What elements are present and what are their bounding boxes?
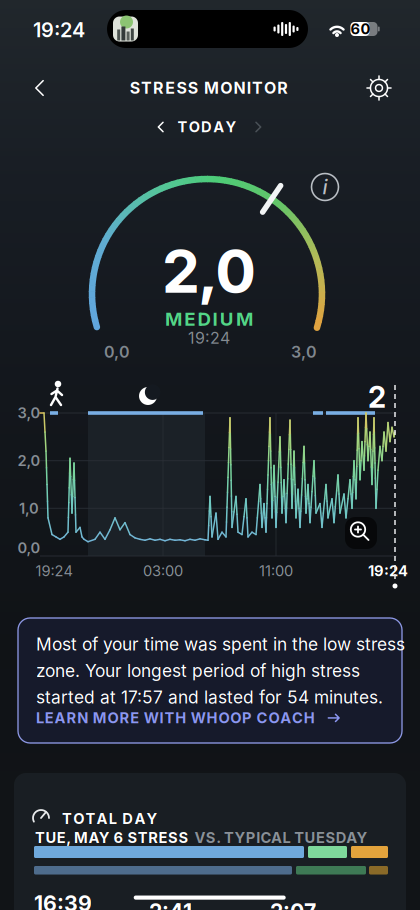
staticText: T bbox=[164, 709, 174, 727]
button[interactable]: L bbox=[36, 709, 343, 727]
staticText: 3,0 bbox=[291, 343, 317, 361]
staticText: O bbox=[220, 79, 232, 97]
staticText: H bbox=[304, 709, 315, 727]
staticText: T bbox=[252, 79, 263, 97]
staticText: 19:24 bbox=[188, 329, 230, 347]
staticText: A bbox=[97, 810, 108, 827]
staticText: E bbox=[130, 709, 139, 727]
staticText: 0,0 bbox=[17, 539, 40, 557]
staticText: 19:24 bbox=[368, 562, 408, 580]
staticText: N bbox=[233, 79, 245, 97]
staticText: 2:07 bbox=[270, 899, 316, 910]
staticText: H bbox=[207, 709, 218, 727]
staticText: M bbox=[236, 308, 253, 330]
staticText: R bbox=[277, 79, 288, 97]
staticText: M bbox=[204, 79, 219, 97]
staticText: H bbox=[175, 709, 186, 727]
staticText: 1,0 bbox=[19, 500, 39, 517]
staticText: i bbox=[322, 175, 327, 199]
staticText: Most of your time was spent in the low s… bbox=[36, 634, 405, 654]
staticText: S bbox=[176, 79, 186, 97]
staticText: T bbox=[85, 810, 95, 827]
staticText: T bbox=[178, 118, 188, 136]
staticText: S bbox=[188, 79, 198, 97]
staticText: C bbox=[257, 709, 268, 727]
staticText: I bbox=[247, 79, 251, 97]
staticText: O bbox=[268, 709, 279, 727]
staticText: U bbox=[220, 308, 234, 330]
staticText: I bbox=[213, 308, 218, 330]
staticText: E bbox=[165, 79, 175, 97]
staticText: O bbox=[230, 709, 241, 727]
button[interactable]: Next day bbox=[245, 114, 271, 140]
staticText: TUE, MAY 6 STRESS bbox=[35, 829, 188, 846]
staticText: N bbox=[77, 709, 88, 727]
button[interactable]: Back bbox=[20, 68, 60, 108]
staticText: 03:00 bbox=[143, 562, 183, 580]
button[interactable]: Zoom chart bbox=[345, 517, 377, 549]
staticText: O bbox=[189, 118, 200, 136]
staticText: Y bbox=[147, 810, 158, 827]
staticText: O bbox=[108, 709, 119, 727]
staticText: R bbox=[119, 709, 129, 727]
staticText: R bbox=[153, 79, 164, 97]
staticText: 60 bbox=[350, 20, 370, 38]
button[interactable]: Previous day bbox=[148, 114, 174, 140]
staticText: P bbox=[242, 709, 252, 727]
staticText: O bbox=[218, 709, 229, 727]
staticText: O bbox=[264, 79, 276, 97]
staticText: VS. TYPICAL TUESDAY bbox=[194, 829, 368, 846]
staticText: A bbox=[134, 810, 145, 827]
staticText: L bbox=[109, 810, 117, 827]
staticText: I bbox=[160, 709, 164, 727]
staticText: T bbox=[141, 79, 152, 97]
staticText: S bbox=[130, 79, 140, 97]
staticText: 2,0 bbox=[17, 452, 40, 469]
staticText: Y bbox=[225, 118, 236, 136]
staticText: 2 bbox=[368, 380, 386, 414]
staticText: C bbox=[292, 709, 303, 727]
staticText: M bbox=[93, 709, 107, 727]
staticText: E bbox=[45, 709, 54, 727]
staticText: A bbox=[213, 118, 224, 136]
staticText: started at 17:57 and lasted for 54 minut… bbox=[36, 687, 383, 707]
staticText: zone. Your longest period of high stress bbox=[36, 660, 360, 681]
staticText: 19:24 bbox=[35, 562, 72, 580]
staticText: A bbox=[280, 709, 291, 727]
staticText: 19:24 bbox=[33, 18, 85, 42]
staticText: 2:41 bbox=[149, 899, 192, 910]
staticText: 11:00 bbox=[259, 562, 293, 580]
staticText: M bbox=[165, 308, 182, 330]
staticText: D bbox=[197, 308, 210, 330]
staticText: O bbox=[73, 810, 84, 827]
staticText: W bbox=[144, 709, 159, 727]
staticText: W bbox=[191, 709, 206, 727]
staticText: 2,0 bbox=[163, 235, 255, 307]
staticText: T bbox=[62, 810, 72, 827]
staticText: A bbox=[55, 709, 66, 727]
staticText: D bbox=[122, 810, 133, 827]
staticText: 16:39 bbox=[34, 891, 92, 910]
button[interactable]: Settings bbox=[359, 68, 399, 108]
staticText: E bbox=[184, 308, 195, 330]
staticText: R bbox=[66, 709, 76, 727]
staticText: D bbox=[201, 118, 212, 136]
staticText: 0,0 bbox=[104, 343, 130, 361]
staticText: 3,0 bbox=[17, 404, 40, 422]
staticText: L bbox=[36, 709, 44, 727]
button[interactable]: Info bbox=[308, 170, 342, 204]
